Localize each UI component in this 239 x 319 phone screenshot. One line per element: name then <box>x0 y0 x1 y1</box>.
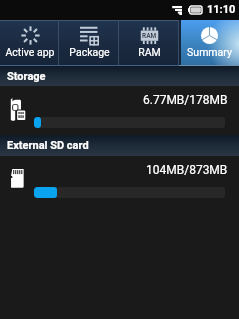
button[interactable]: 6.77MB/178MB <box>0 86 239 135</box>
staticText: 104MB/873MB <box>146 163 228 177</box>
button[interactable]: 104MB/873MB <box>0 156 239 205</box>
button[interactable]: Package <box>59 20 119 66</box>
staticText: Storage <box>7 70 46 83</box>
staticText: Package <box>69 46 110 58</box>
staticText: Summary <box>187 46 232 58</box>
staticText: External SD card <box>7 139 89 152</box>
staticText: RAM <box>142 32 157 40</box>
staticText: Active app <box>5 46 55 58</box>
button[interactable]: RAM <box>119 20 179 66</box>
staticText: 6.77MB/178MB <box>143 93 228 107</box>
button[interactable]: Active apps <box>0 20 59 66</box>
staticText: RAM <box>138 46 161 58</box>
button[interactable]: Summary <box>179 20 239 66</box>
staticText: 11:10 <box>207 3 236 16</box>
